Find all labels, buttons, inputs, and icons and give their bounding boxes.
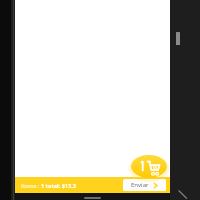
button[interactable]: Enviar — [123, 179, 166, 191]
staticText: 1 total: $13.3 — [41, 182, 76, 189]
staticText: Enviar — [131, 181, 149, 189]
button[interactable]: Shopping cart — [130, 154, 168, 180]
staticText: items : — [21, 182, 41, 189]
